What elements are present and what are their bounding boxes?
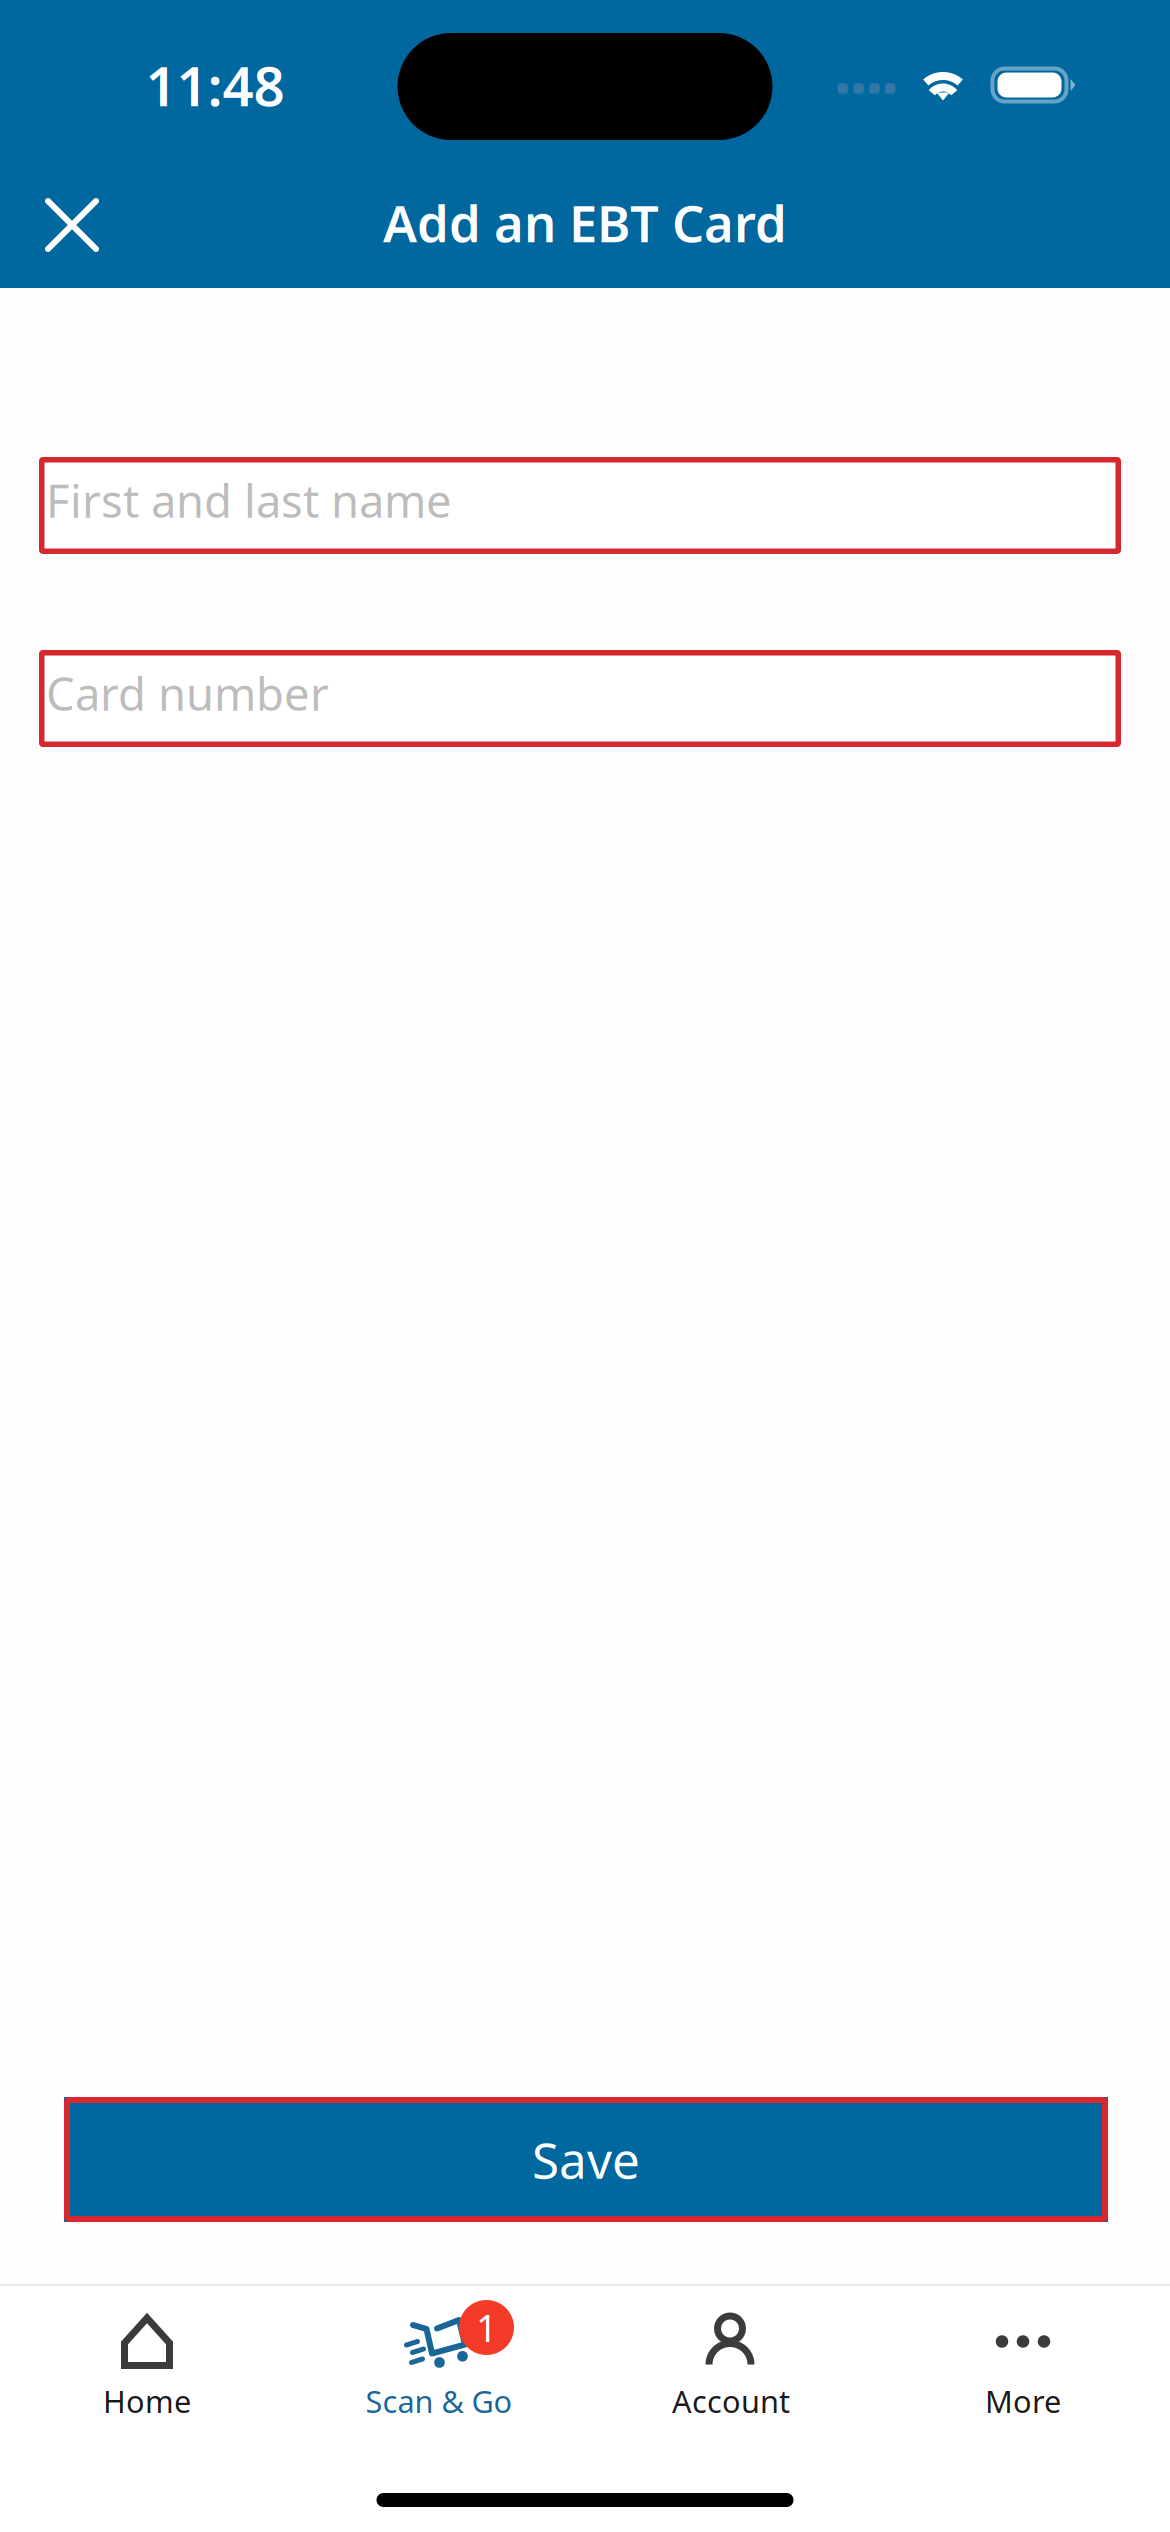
- staticText: 1: [476, 2303, 497, 2352]
- staticText: Card number: [46, 663, 329, 723]
- staticText: Account: [672, 2381, 790, 2421]
- button[interactable]: Close: [24, 170, 120, 288]
- button[interactable]: 1: [293, 2286, 585, 2436]
- staticText: First and last name: [46, 470, 452, 530]
- staticText: Save: [532, 2127, 640, 2192]
- button[interactable]: Home: [1, 2286, 293, 2436]
- button[interactable]: Save: [0, 2097, 1170, 2222]
- button[interactable]: Account: [585, 2286, 877, 2436]
- button[interactable]: More: [877, 2286, 1169, 2436]
- staticText: Home: [103, 2381, 191, 2421]
- staticText: Scan & Go: [365, 2381, 512, 2421]
- staticText: Add an EBT Card: [383, 189, 787, 256]
- staticText: More: [985, 2381, 1061, 2421]
- staticText: 11:48: [145, 49, 284, 121]
